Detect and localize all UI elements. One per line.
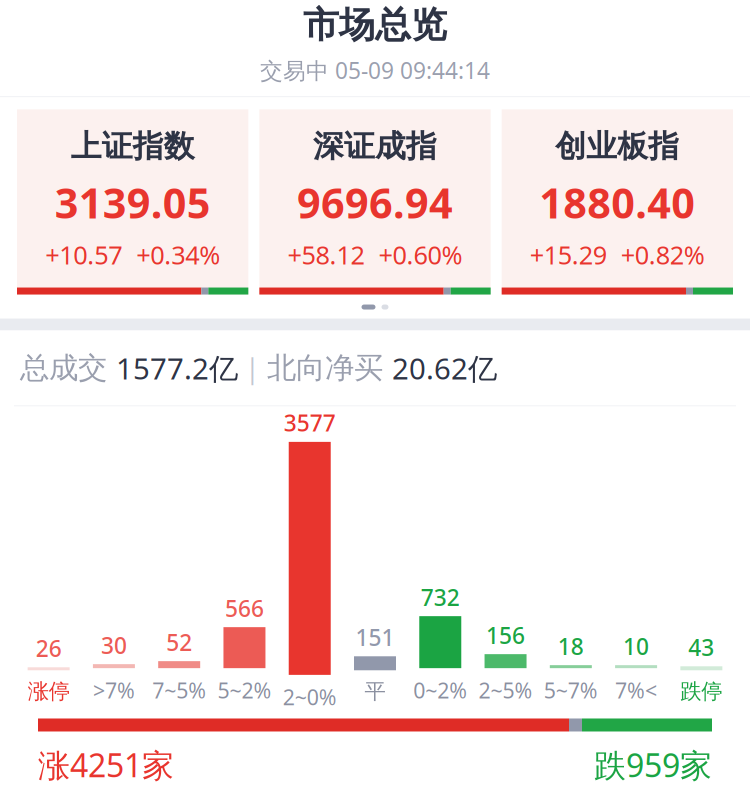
staticText: 总成交 — [20, 350, 116, 386]
staticText: 7~5% — [152, 676, 206, 704]
staticText: 交易中 05-09 09:44:14 — [260, 55, 490, 85]
staticText: 9696.94 — [297, 175, 453, 230]
staticText: 5~7% — [544, 676, 598, 704]
staticText: 涨4251家 — [38, 743, 174, 786]
staticText: 43 — [688, 632, 714, 662]
staticText: 上证指数 — [71, 127, 195, 165]
staticText: 深证成指 — [313, 127, 437, 165]
staticText: 创业板指 — [555, 127, 679, 165]
staticText: 156 — [486, 620, 525, 650]
staticText: 10 — [623, 631, 649, 661]
staticText: 3577 — [284, 408, 336, 438]
staticText: 跌959家 — [594, 743, 712, 786]
staticText: +0.60% — [378, 238, 462, 271]
staticText: +0.82% — [621, 238, 705, 271]
staticText: +10.57 — [45, 238, 122, 271]
staticText: 跌停 — [680, 678, 722, 704]
staticText: >7% — [93, 676, 135, 704]
button[interactable]: 上证指数 — [17, 109, 248, 294]
staticText: 平 — [364, 678, 385, 704]
staticText: 30 — [101, 630, 127, 660]
staticText: 7%< — [615, 676, 657, 704]
button[interactable]: 创业板指 — [502, 109, 733, 294]
staticText: +15.29 — [530, 238, 607, 271]
staticText: 北向净买 — [267, 350, 392, 386]
staticText: 1880.40 — [539, 175, 695, 230]
staticText: 52 — [166, 627, 192, 657]
button[interactable]: 深证成指 — [259, 109, 491, 294]
staticText: 涨停 — [28, 678, 70, 704]
staticText: 732 — [421, 582, 460, 612]
staticText: 1577.2亿 — [116, 348, 238, 387]
staticText: 市场总览 — [303, 3, 447, 47]
staticText: 566 — [225, 593, 264, 623]
staticText: 0~2% — [413, 676, 467, 704]
staticText: 2~5% — [478, 676, 532, 704]
staticText: | — [238, 350, 267, 386]
staticText: 5~2% — [217, 676, 271, 704]
staticText: 26 — [36, 633, 62, 663]
staticText: 18 — [558, 631, 584, 661]
staticText: 3139.05 — [55, 175, 211, 230]
staticText: 2~0% — [283, 683, 337, 711]
staticText: 20.62亿 — [392, 348, 497, 387]
staticText: 151 — [355, 622, 394, 652]
staticText: +58.12 — [287, 238, 364, 271]
staticText: +0.34% — [136, 238, 220, 271]
